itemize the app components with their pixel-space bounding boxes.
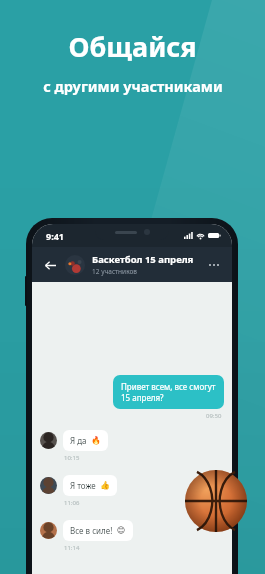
- staticText: Привет всем, все смогут 15 апреля?: [121, 381, 216, 403]
- button[interactable]: Я тоже: [63, 475, 117, 496]
- staticText: 10:15: [64, 454, 80, 462]
- staticText: 😊: [117, 526, 126, 535]
- staticText: 👍: [100, 481, 110, 490]
- staticText: 🔥: [91, 436, 101, 445]
- button[interactable]: Баскетбол 15 апреля: [92, 253, 205, 276]
- staticText: Я да: [70, 435, 87, 446]
- button[interactable]: Все в силе!: [63, 520, 133, 541]
- staticText: с другими участниками: [43, 76, 223, 96]
- staticText: 09:50: [206, 412, 222, 420]
- button[interactable]: Я да: [63, 430, 108, 451]
- staticText: 11:06: [64, 499, 80, 507]
- staticText: 11:14: [64, 544, 80, 552]
- staticText: 9:41: [46, 230, 64, 242]
- button[interactable]: Назад: [41, 256, 59, 274]
- staticText: Баскетбол 15 апреля: [92, 253, 194, 266]
- button[interactable]: Ещё: [205, 256, 223, 274]
- staticText: Общайся: [68, 28, 197, 65]
- staticText: Все в силе!: [70, 525, 113, 536]
- staticText: 12 участников: [92, 267, 137, 276]
- staticText: Я тоже: [70, 480, 96, 491]
- button[interactable]: Привет всем, все смогут 15 апреля?: [113, 375, 224, 409]
